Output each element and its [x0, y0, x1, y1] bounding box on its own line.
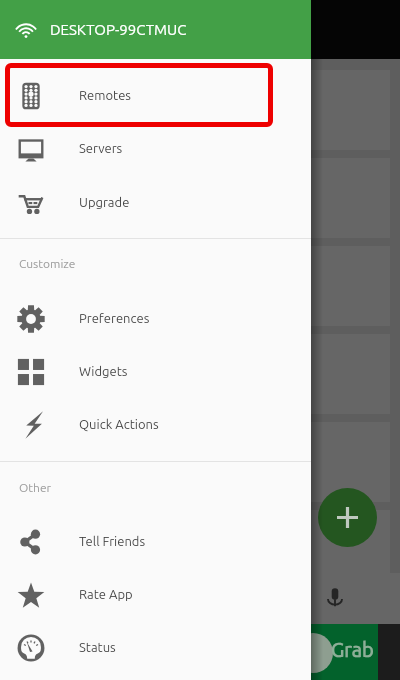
button[interactable]: Tell Friends: [0, 515, 311, 568]
button[interactable]: Status: [0, 621, 311, 674]
button[interactable]: Upgrade: [0, 176, 311, 229]
button[interactable]: Preferences: [0, 292, 311, 345]
staticText: Quick Actions: [79, 417, 159, 432]
staticText: Status: [79, 640, 116, 655]
button[interactable]: Quick Actions: [0, 398, 311, 451]
staticText: DESKTOP-99CTMUC: [50, 21, 187, 38]
button[interactable]: Widgets: [0, 345, 311, 398]
button[interactable]: Voice search: [324, 587, 346, 609]
button[interactable]: Add: [318, 488, 377, 547]
staticText: Rate App: [79, 587, 133, 602]
staticText: Remotes: [79, 88, 131, 103]
staticText: Tell Friends: [79, 534, 146, 549]
staticText: Customize: [19, 257, 76, 270]
staticText: Grab: [331, 638, 374, 660]
staticText: Upgrade: [79, 195, 130, 210]
button[interactable]: Remotes: [0, 69, 311, 122]
button[interactable]: Rate App: [0, 568, 311, 621]
staticText: Widgets: [79, 364, 128, 379]
staticText: Other: [19, 481, 52, 494]
staticText: Servers: [79, 141, 123, 156]
button[interactable]: Servers: [0, 122, 311, 175]
staticText: Preferences: [79, 311, 150, 326]
